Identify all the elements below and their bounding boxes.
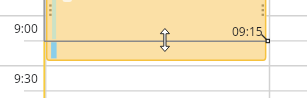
staticText: 9:00 — [14, 20, 38, 36]
staticText: 09:15 — [232, 23, 263, 39]
staticText: 9:30 — [14, 70, 38, 86]
